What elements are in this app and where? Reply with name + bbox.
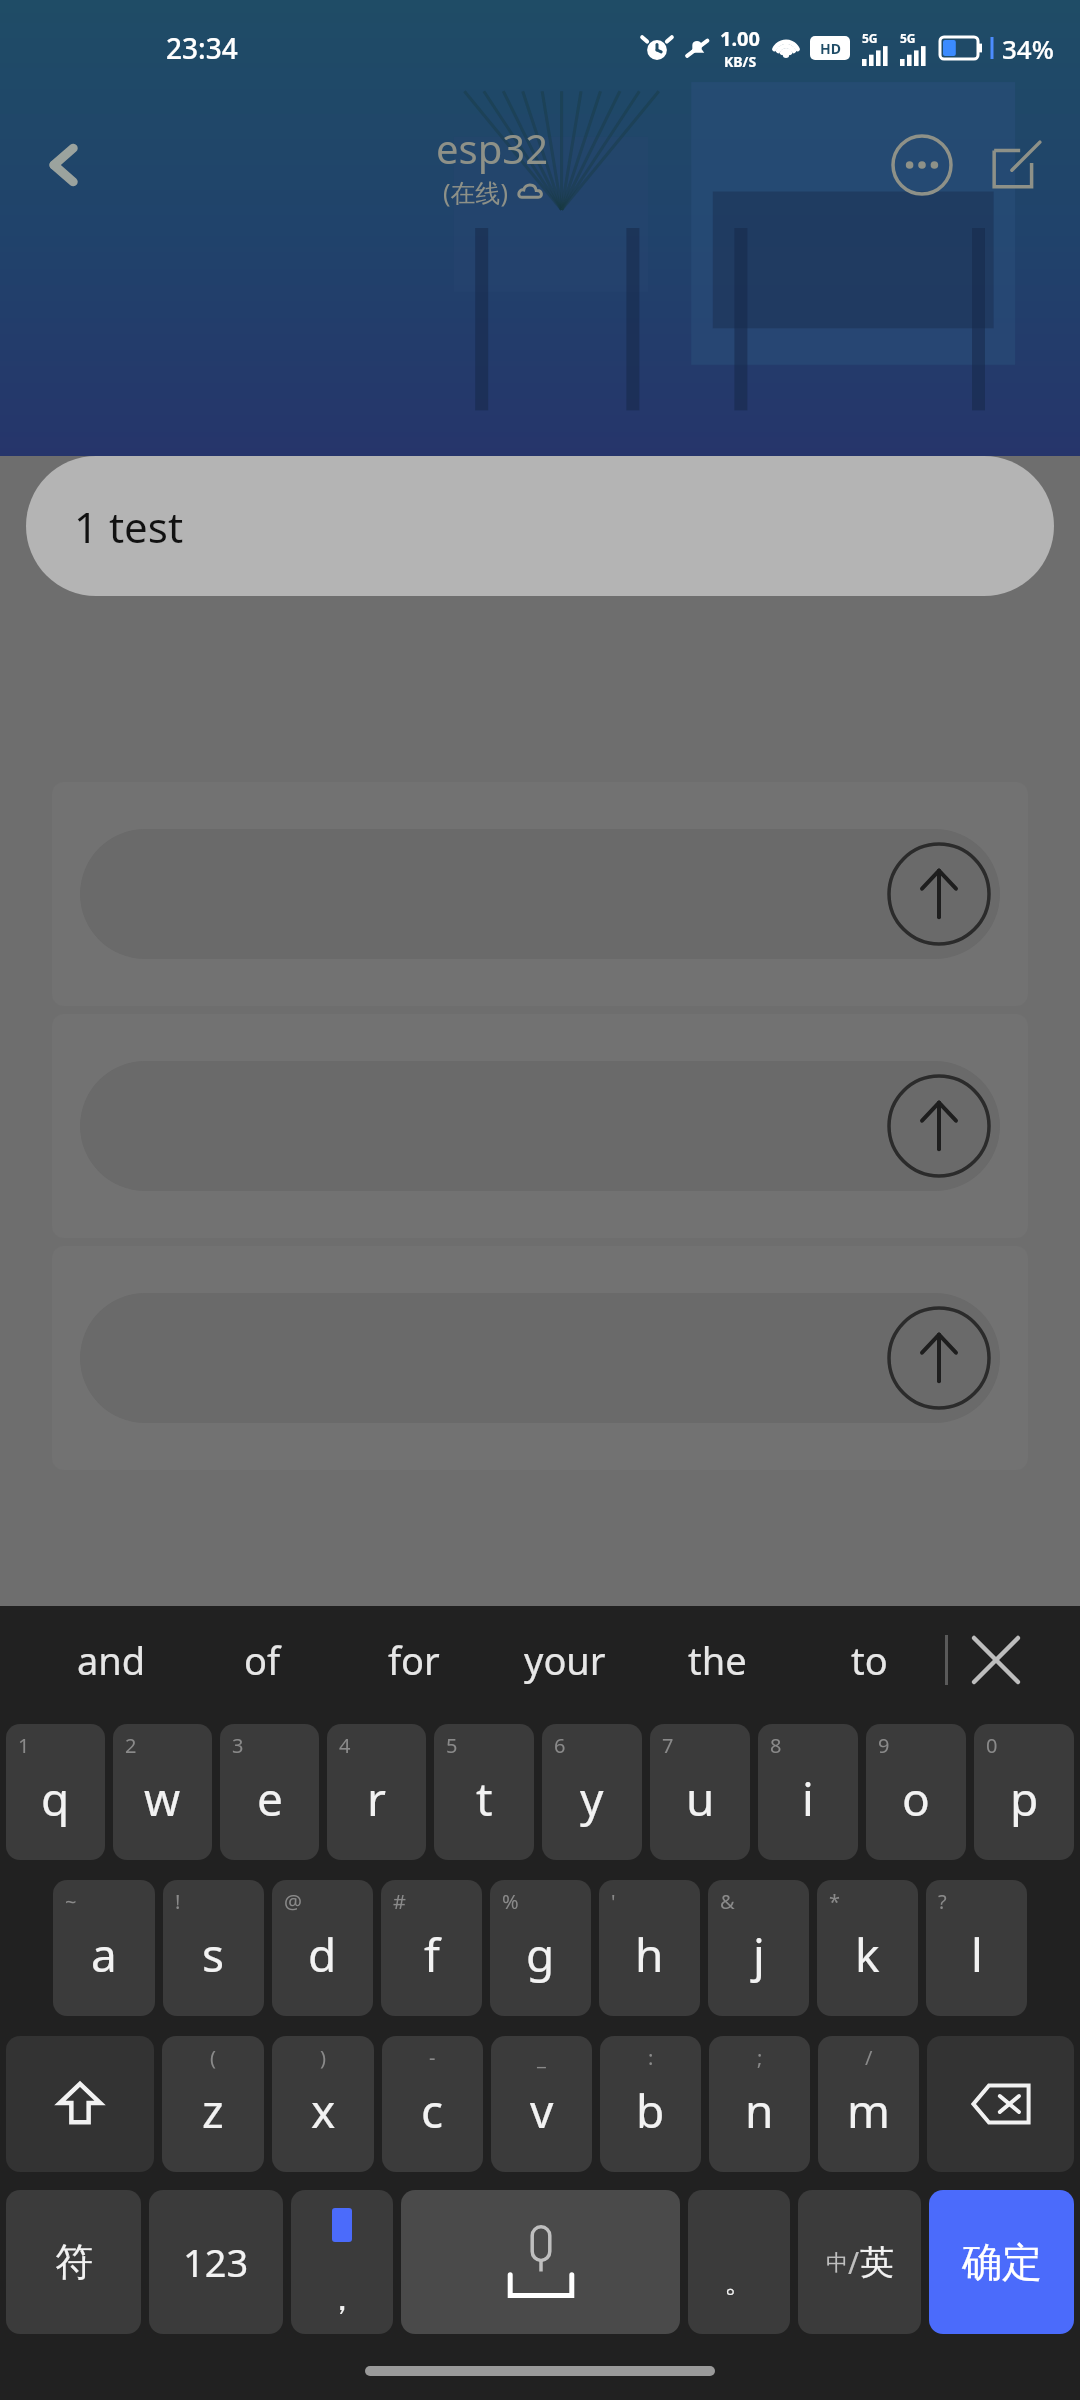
button[interactable]: Send <box>52 1246 1028 1470</box>
staticText: h <box>635 1923 664 1986</box>
button[interactable]: Send <box>886 1073 992 1179</box>
staticText: e <box>257 1767 283 1830</box>
staticText: 确定 <box>962 2237 1042 2287</box>
button[interactable]: 1 test <box>26 456 1054 596</box>
staticText: t <box>476 1767 493 1830</box>
button[interactable]: Send <box>52 1014 1028 1238</box>
staticText: y <box>580 1767 604 1830</box>
button[interactable]: Send <box>52 782 1028 1006</box>
button[interactable]: More options <box>884 127 960 203</box>
staticText: u <box>686 1767 715 1830</box>
button[interactable]: & <box>708 1880 809 2016</box>
staticText: 34% <box>1002 31 1054 66</box>
button[interactable]: / <box>818 2036 919 2172</box>
staticText: k <box>855 1923 880 1986</box>
button[interactable]: ' <box>599 1880 700 2016</box>
button[interactable]: ? <box>926 1880 1027 2016</box>
staticText: d <box>308 1923 337 1986</box>
staticText: c <box>421 2079 444 2142</box>
button[interactable]: 2 <box>113 1724 212 1860</box>
button[interactable]: Close suggestions <box>948 1606 1044 1714</box>
button[interactable]: ; <box>709 2036 810 2172</box>
button[interactable]: 4 <box>327 1724 426 1860</box>
button[interactable]: your <box>489 1606 641 1714</box>
staticText: to <box>851 1634 888 1686</box>
button[interactable]: 123 <box>149 2190 283 2334</box>
button[interactable]: Back <box>26 127 102 203</box>
button[interactable]: 中 <box>798 2190 921 2334</box>
button[interactable]: Comma <box>291 2190 393 2334</box>
staticText: r <box>367 1767 386 1830</box>
button[interactable]: to <box>793 1606 945 1714</box>
staticText: w <box>144 1767 181 1830</box>
staticText: s <box>202 1923 225 1986</box>
staticText: : <box>648 2044 654 2071</box>
button[interactable]: 1 <box>6 1724 105 1860</box>
staticText: l <box>971 1923 983 1986</box>
button[interactable]: of <box>187 1606 338 1714</box>
staticText: KB/S <box>724 52 757 71</box>
button[interactable]: 0 <box>974 1724 1074 1860</box>
button[interactable]: 9 <box>866 1724 966 1860</box>
staticText: ; <box>757 2044 763 2071</box>
staticText: 1.00 <box>720 25 760 52</box>
staticText: HD <box>820 39 841 58</box>
staticText: q <box>41 1767 70 1830</box>
staticText: x <box>311 2079 336 2142</box>
staticText: % <box>502 1888 519 1915</box>
button[interactable]: Send <box>886 841 992 947</box>
staticText: your <box>524 1634 606 1686</box>
button[interactable]: @ <box>272 1880 373 2016</box>
button[interactable]: 6 <box>542 1724 642 1860</box>
staticText: ' <box>611 1888 616 1915</box>
button[interactable]: for <box>338 1606 489 1714</box>
staticText: a <box>91 1923 117 1986</box>
button[interactable]: and <box>36 1606 187 1714</box>
staticText: ( <box>210 2044 216 2071</box>
button[interactable]: * <box>817 1880 918 2016</box>
button[interactable]: Period <box>688 2190 790 2334</box>
staticText: (在线) <box>443 175 509 209</box>
button[interactable]: % <box>490 1880 591 2016</box>
button[interactable]: # <box>381 1880 482 2016</box>
staticText: * <box>829 1888 841 1915</box>
button[interactable]: Edit <box>978 127 1054 203</box>
staticText: f <box>424 1923 440 1986</box>
button[interactable]: ) <box>272 2036 374 2172</box>
staticText: ) <box>320 2044 326 2071</box>
button[interactable]: _ <box>491 2036 592 2172</box>
staticText: n <box>745 2079 774 2142</box>
button[interactable]: Space <box>401 2190 680 2334</box>
staticText: ? <box>938 1888 947 1915</box>
button[interactable]: Send <box>886 1305 992 1411</box>
staticText: 4 <box>339 1732 351 1759</box>
staticText: / <box>848 2242 860 2283</box>
button[interactable]: ~ <box>53 1880 155 2016</box>
staticText: esp32 <box>436 121 549 175</box>
staticText: 123 <box>183 2236 249 2288</box>
button[interactable]: Backspace <box>927 2036 1074 2172</box>
button[interactable]: Shift <box>6 2036 154 2172</box>
button[interactable]: 7 <box>650 1724 750 1860</box>
button[interactable]: 符 <box>6 2190 141 2334</box>
button[interactable]: the <box>641 1606 793 1714</box>
button[interactable]: : <box>600 2036 701 2172</box>
staticText: m <box>847 2079 891 2142</box>
button[interactable]: 3 <box>220 1724 319 1860</box>
button[interactable]: - <box>382 2036 483 2172</box>
staticText: 9 <box>878 1732 890 1759</box>
staticText: 8 <box>770 1732 782 1759</box>
staticText: @ <box>284 1888 302 1915</box>
button[interactable]: 5 <box>434 1724 534 1860</box>
button[interactable]: ! <box>163 1880 264 2016</box>
button[interactable]: 确定 <box>929 2190 1074 2334</box>
staticText: of <box>244 1634 281 1686</box>
staticText: 0 <box>986 1732 998 1759</box>
button[interactable]: ( <box>162 2036 264 2172</box>
staticText: 5 <box>446 1732 458 1759</box>
staticText: 符 <box>55 2238 93 2286</box>
button[interactable]: 8 <box>758 1724 858 1860</box>
staticText: o <box>902 1767 930 1830</box>
staticText: 1 <box>18 1732 30 1759</box>
staticText: 23:34 <box>166 29 238 67</box>
